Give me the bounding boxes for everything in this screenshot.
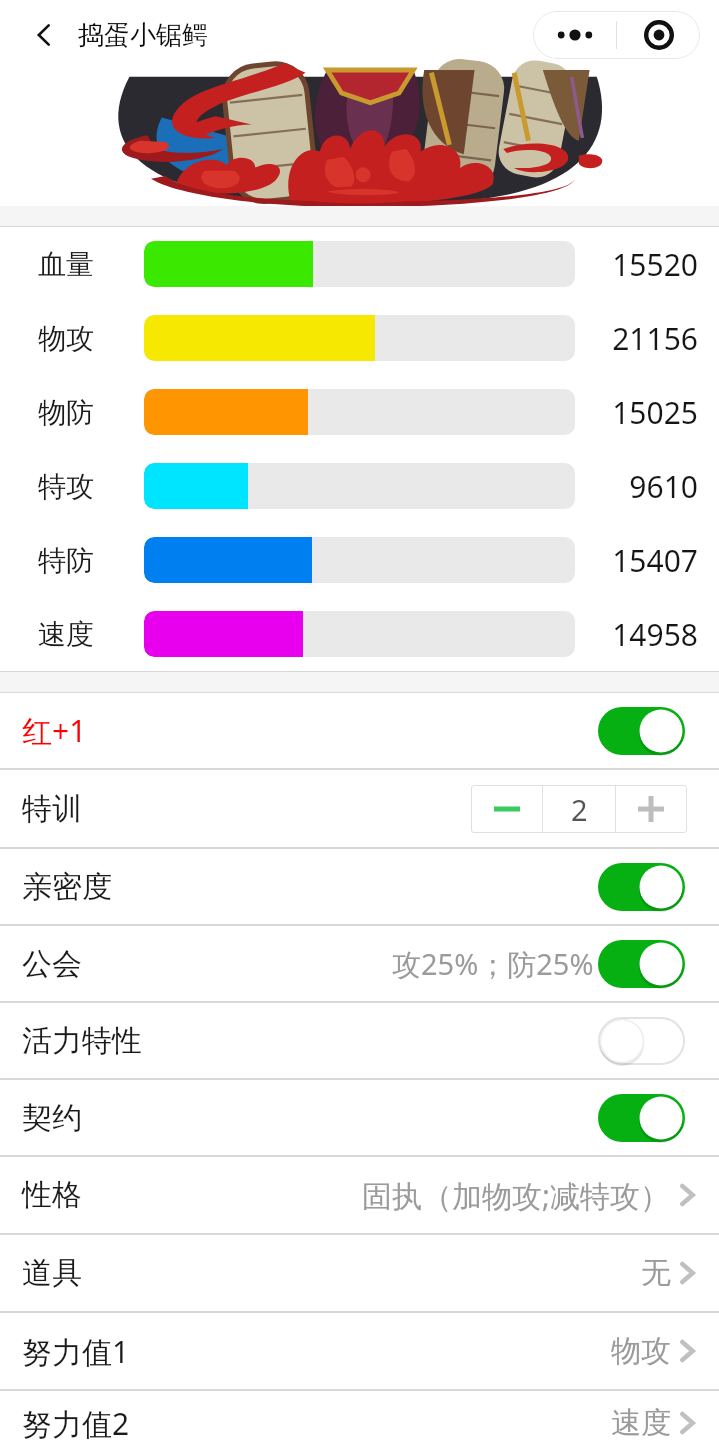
button[interactable]: 活力特性 — [0, 1003, 719, 1078]
staticText: 捣蛋小锯鳄 — [78, 19, 208, 52]
staticText: 物攻 — [38, 321, 94, 356]
staticText: 红+1 — [22, 710, 87, 751]
staticText: 15025 — [612, 392, 698, 433]
staticText: 性格 — [22, 1176, 82, 1214]
staticText: 14958 — [612, 614, 698, 655]
button[interactable]: Back — [20, 11, 68, 59]
staticText: 道具 — [22, 1254, 82, 1292]
staticText: 亲密度 — [22, 868, 112, 906]
staticText: 特防 — [38, 543, 94, 578]
button[interactable]: 红+1 — [0, 693, 719, 768]
staticText: 无 — [641, 1254, 671, 1292]
button[interactable]: 努力值2 — [0, 1391, 719, 1455]
button[interactable]: 亲密度 — [0, 849, 719, 924]
button[interactable]: Increase — [616, 785, 686, 833]
staticText: 物攻 — [611, 1332, 671, 1370]
button[interactable]: Decrease — [471, 785, 542, 833]
staticText: 9610 — [629, 466, 698, 507]
staticText: 21156 — [612, 318, 698, 359]
button[interactable]: More — [533, 11, 616, 59]
staticText: 15407 — [612, 540, 698, 581]
button[interactable]: 性格 — [0, 1157, 719, 1233]
staticText: 固执（加物攻;减特攻） — [362, 1175, 671, 1216]
staticText: 努力值1 — [22, 1331, 130, 1372]
staticText: 15520 — [612, 244, 698, 285]
staticText: 速度 — [611, 1404, 671, 1442]
staticText: 特训 — [22, 790, 82, 828]
staticText: 物防 — [38, 395, 94, 430]
staticText: 攻25%；防25% — [392, 944, 594, 984]
staticText: 努力值2 — [22, 1403, 130, 1444]
staticText: 公会 — [22, 945, 82, 983]
button[interactable]: 契约 — [0, 1080, 719, 1155]
staticText: 活力特性 — [22, 1022, 142, 1060]
staticText: 契约 — [22, 1099, 82, 1137]
staticText: 2 — [571, 790, 588, 829]
button[interactable]: 公会 — [0, 926, 719, 1001]
staticText: 速度 — [38, 617, 94, 652]
button[interactable]: 道具 — [0, 1235, 719, 1311]
staticText: 血量 — [38, 247, 94, 282]
button[interactable]: Close — [617, 11, 700, 59]
button[interactable]: 努力值1 — [0, 1313, 719, 1389]
staticText: 特攻 — [38, 469, 94, 504]
